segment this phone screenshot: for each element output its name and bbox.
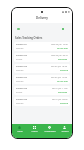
staticText: Delivered xyxy=(58,58,68,61)
staticText: Sat 01 Jun 08:20 xyxy=(52,98,68,101)
staticText: On the way xyxy=(57,80,68,83)
button[interactable]: #ORD7784 xyxy=(14,75,70,84)
staticText: On the way xyxy=(57,47,68,50)
staticText: Pickup xyxy=(16,91,23,94)
staticText: Delivery xyxy=(16,102,24,105)
staticText: Pickup xyxy=(16,58,23,61)
staticText: Pending xyxy=(60,102,68,105)
button[interactable]: Orders xyxy=(27,124,42,138)
button[interactable]: #ORD7782 xyxy=(14,53,70,62)
button[interactable]: #ORD7781 xyxy=(14,42,70,51)
staticText: Notifications xyxy=(44,130,56,133)
button[interactable]: Filter orders xyxy=(17,28,20,30)
staticText: Sun 02 Jun 18:30 xyxy=(51,65,68,68)
staticText: Delivery xyxy=(36,16,48,20)
button[interactable]: #ORD7786 xyxy=(14,97,70,106)
staticText: Delivery xyxy=(16,69,24,72)
staticText: Delivered xyxy=(58,91,68,94)
button[interactable]: #ORD7785 xyxy=(14,86,70,95)
button[interactable]: #ORD7783 xyxy=(14,64,70,73)
staticText: Home xyxy=(17,130,23,133)
staticText: #ORD7786 xyxy=(16,98,28,101)
staticText: #ORD7785 xyxy=(16,87,28,90)
staticText: Pending xyxy=(60,69,68,72)
staticText: Sat 01 Jun 11:50 xyxy=(52,87,68,90)
staticText: Sun 02 Jun 14:05 xyxy=(51,76,68,79)
staticText: #ORD7782 xyxy=(16,54,28,57)
button[interactable]: Notifications xyxy=(42,124,57,138)
staticText: Account xyxy=(61,130,69,133)
staticText: Sales Tracking Orders xyxy=(15,36,43,40)
staticText: #ORD7781 xyxy=(16,43,28,46)
staticText: Orders xyxy=(31,130,38,133)
staticText: #ORD7783 xyxy=(16,65,28,68)
button[interactable]: Account xyxy=(57,124,72,138)
staticText: Mon 03 Jun 09:12 xyxy=(51,54,68,57)
button[interactable]: Home xyxy=(12,124,27,138)
staticText: #ORD7784 xyxy=(16,76,28,79)
staticText: Delivery xyxy=(16,47,24,50)
staticText: Delivery xyxy=(16,80,24,83)
staticText: Mon 03 Jun 10:45 xyxy=(51,43,68,46)
